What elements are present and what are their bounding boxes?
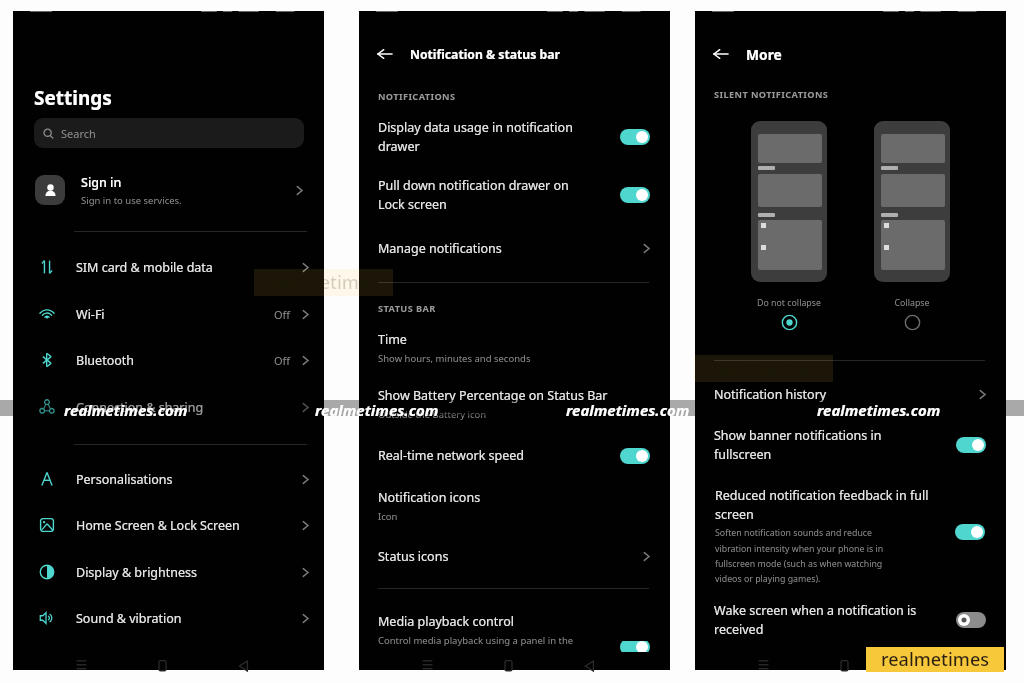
staticText: realmetimes [270,270,378,295]
staticText: Show banner notifications in fullscreen [714,427,914,463]
button[interactable]: Recents [75,658,88,671]
staticText: Notification icons [378,489,481,506]
button[interactable]: Home [156,658,169,671]
staticText: Display & brightness [76,564,300,581]
staticText: Sign in to use services. [81,194,182,207]
button[interactable]: Recents [757,658,770,671]
button[interactable]: Notification history [714,386,990,403]
staticText: Bluetooth [76,352,274,369]
staticText: realmetimes.com [315,400,439,420]
button[interactable]: Back [919,658,932,671]
staticText: Home Screen & Lock Screen [76,517,300,534]
button[interactable]: Back [709,42,733,66]
button[interactable]: Recents [421,658,434,671]
staticText: Status icons [378,548,641,565]
staticText: Wake screen when a notification is recei… [714,602,919,638]
button[interactable]: Toggle on [620,641,650,652]
button[interactable]: Toggle on [956,437,986,453]
button[interactable]: Sound & vibration [38,595,313,641]
staticText: More [746,45,782,64]
button[interactable]: Show Battery Percentage on Status Bar [378,387,654,421]
staticText: Icon [378,510,398,523]
button[interactable]: Back [373,42,397,66]
button[interactable]: Manage notifications [378,240,654,257]
button[interactable]: Display & brightness [38,549,313,595]
staticText: Reduced notification feedback in full sc… [715,487,943,523]
staticText: Off [274,307,291,322]
button[interactable]: Back [583,658,596,671]
button[interactable]: Select option [904,314,921,331]
button[interactable]: Toggle on [620,187,650,203]
staticText: Soften notification sounds and reduce vi… [715,527,908,584]
button[interactable]: Back [237,658,250,671]
staticText: Wi-Fi [76,306,274,323]
staticText: Notification & status bar [410,46,561,63]
button[interactable]: Time [378,331,654,365]
button[interactable]: Personalisations [38,456,313,502]
button[interactable]: Wi-Fi [38,291,313,337]
button[interactable]: Toggle on [620,129,650,145]
staticText: realmetimes [881,647,989,672]
button[interactable]: Home [838,658,851,671]
staticText: Control media playback using a panel in … [378,634,574,647]
button[interactable]: Display data usage in notification drawe… [378,119,650,155]
staticText: realmetimes.com [566,400,690,420]
button[interactable]: Show banner notifications in fullscreen [714,427,986,463]
staticText: realmetimes.com [64,400,188,420]
staticText: Notification history [714,386,977,403]
button[interactable]: Bluetooth [38,337,313,383]
staticText: Off [274,353,291,368]
button[interactable]: Toggle off [956,612,986,628]
staticText: Pull down notification drawer on Lock sc… [378,177,586,213]
staticText: Media playback control [378,613,514,630]
staticText: Sound & vibration [76,610,300,627]
staticText: realmetimes [710,356,818,381]
staticText: Display data usage in notification drawe… [378,119,588,155]
button[interactable]: Pull down notification drawer on Lock sc… [378,177,650,213]
button[interactable]: Real-time network speed [378,447,650,464]
staticText: Outside the Battery icon [378,408,487,421]
button[interactable]: Search [34,118,304,148]
staticText: Sign in [81,174,122,191]
staticText: SIM card & mobile data [76,259,300,276]
staticText: Show hours, minutes and seconds [378,352,531,365]
button[interactable]: Wake screen when a notification is recei… [714,602,986,638]
staticText: Real-time network speed [378,447,608,464]
staticText: Do not collapse [757,297,821,309]
staticText: Collapse [880,297,944,309]
staticText: Manage notifications [378,240,641,257]
button[interactable]: Home [502,658,515,671]
button[interactable]: Home Screen & Lock Screen [38,502,313,548]
staticText: NOTIFICATIONS [378,90,456,103]
staticText: STATUS BAR [378,302,436,315]
staticText: Search [61,126,96,141]
staticText: Connection & sharing [76,399,300,416]
staticText: Show Battery Percentage on Status Bar [378,387,608,404]
button[interactable]: Notification icons [378,489,654,523]
staticText: SILENT NOTIFICATIONS [714,88,829,101]
button[interactable]: Connection & sharing [38,384,313,430]
button[interactable]: Toggle on [620,448,650,464]
staticText: Personalisations [76,471,300,488]
button[interactable]: Toggle on [955,524,985,540]
button[interactable]: Select option [781,314,798,331]
staticText: realmetimes.com [817,400,941,420]
button[interactable]: SIM card & mobile data [38,244,313,290]
staticText: Time [378,331,407,348]
button[interactable]: Sign in [35,171,307,209]
staticText: Settings [34,85,112,111]
button[interactable]: Status icons [378,548,654,565]
